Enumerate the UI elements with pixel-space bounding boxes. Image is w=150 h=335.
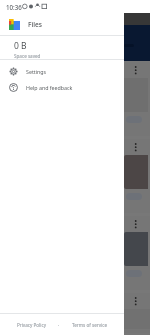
button[interactable]: Help and feedback: [0, 79, 124, 95]
staticText: Settings: [26, 68, 47, 75]
other: Help and feedback: [9, 83, 18, 92]
staticText: Terms of service: [72, 322, 107, 328]
staticText: Privacy Policy: [17, 322, 46, 328]
staticText: ·: [58, 322, 60, 328]
button[interactable]: Settings: [0, 63, 124, 79]
staticText: 0 B: [14, 40, 27, 52]
staticText: Help and feedback: [26, 84, 73, 91]
other: Settings: [9, 67, 18, 76]
staticText: 10:36: [6, 3, 22, 11]
staticText: Space saved: [14, 53, 41, 59]
button[interactable]: Terms of service: [69, 320, 110, 330]
button[interactable]: Privacy Policy: [14, 320, 49, 330]
staticText: Files: [28, 20, 43, 29]
